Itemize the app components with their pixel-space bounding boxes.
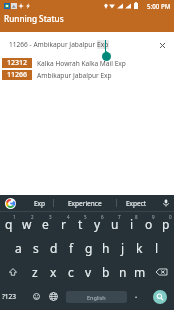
- staticText: Experience: [68, 199, 102, 208]
- staticText: c: [68, 264, 74, 280]
- button[interactable]: c: [62, 260, 80, 284]
- staticText: 2: [31, 214, 34, 220]
- staticText: Ambikapur Jabalpur Exp: [37, 71, 112, 80]
- button[interactable]: Expect: [117, 195, 157, 211]
- staticText: z: [32, 264, 38, 280]
- staticText: g: [85, 240, 93, 256]
- button[interactable]: a: [9, 236, 27, 260]
- staticText: i: [130, 216, 134, 232]
- button[interactable]: Emoji: [28, 284, 45, 309]
- button[interactable]: f: [63, 236, 80, 260]
- staticText: 12312: [7, 58, 28, 68]
- staticText: y: [94, 216, 101, 232]
- button[interactable]: h: [97, 236, 114, 260]
- button[interactable]: m: [131, 260, 148, 284]
- button[interactable]: 12312: [0, 57, 174, 69]
- button[interactable]: j: [114, 236, 131, 260]
- staticText: v: [85, 264, 92, 280]
- staticText: h: [102, 240, 110, 256]
- staticText: Expect: [126, 199, 147, 208]
- staticText: Exp: [34, 199, 46, 208]
- button[interactable]: e: [36, 212, 54, 236]
- button[interactable]: d: [45, 236, 63, 260]
- button[interactable]: Clear: [154, 37, 170, 53]
- staticText: 5: [84, 214, 87, 220]
- button[interactable]: Exp: [20, 195, 53, 211]
- staticText: b: [102, 264, 110, 280]
- staticText: English: [87, 294, 106, 301]
- staticText: 11266: [7, 70, 28, 80]
- button[interactable]: l: [148, 236, 165, 260]
- staticText: ?123: [2, 292, 16, 301]
- button[interactable]: Google search: [0, 195, 20, 211]
- button[interactable]: t: [72, 212, 89, 236]
- button[interactable]: x: [44, 260, 62, 284]
- staticText: 6: [101, 214, 104, 220]
- staticText: 3: [49, 214, 52, 220]
- button[interactable]: u: [106, 212, 123, 236]
- button[interactable]: g: [80, 236, 97, 260]
- staticText: 1: [13, 214, 16, 220]
- staticText: e: [42, 216, 49, 232]
- staticText: o: [145, 216, 153, 232]
- button[interactable]: Experience: [54, 195, 116, 211]
- button[interactable]: Voice input: [157, 195, 174, 211]
- staticText: m: [134, 264, 146, 280]
- button[interactable]: Backspace: [148, 260, 174, 284]
- button[interactable]: 11266: [0, 69, 174, 81]
- staticText: w: [22, 216, 32, 232]
- button[interactable]: i: [123, 212, 140, 236]
- button[interactable]: k: [131, 236, 148, 260]
- staticText: t: [78, 216, 83, 232]
- button[interactable]: q: [0, 212, 18, 236]
- staticText: j: [121, 240, 125, 256]
- button[interactable]: w: [18, 212, 36, 236]
- button[interactable]: Change language: [45, 284, 61, 309]
- button[interactable]: s: [27, 236, 45, 260]
- staticText: 11266 - Ambikapur Jabalpur: [9, 40, 97, 49]
- staticText: k: [136, 240, 143, 256]
- staticText: f: [69, 240, 74, 256]
- staticText: u: [111, 216, 119, 232]
- button[interactable]: o: [140, 212, 157, 236]
- staticText: Running Status: [4, 13, 64, 24]
- staticText: n: [119, 264, 127, 280]
- button[interactable]: Search: [146, 284, 174, 309]
- button[interactable]: .: [127, 284, 146, 309]
- staticText: Exp: [97, 40, 109, 49]
- staticText: 0: [169, 214, 172, 220]
- button[interactable]: z: [26, 260, 44, 284]
- staticText: 9: [152, 214, 155, 220]
- button[interactable]: p: [157, 212, 174, 236]
- staticText: 7: [118, 214, 121, 220]
- staticText: q: [5, 216, 13, 232]
- button[interactable]: y: [89, 212, 106, 236]
- button[interactable]: r: [54, 212, 72, 236]
- staticText: d: [50, 240, 58, 256]
- button[interactable]: Shift: [0, 260, 26, 284]
- staticText: r: [61, 216, 66, 232]
- button[interactable]: ?123: [0, 284, 22, 309]
- staticText: .: [135, 289, 138, 300]
- button[interactable]: n: [114, 260, 131, 284]
- staticText: 4: [67, 214, 70, 220]
- staticText: s: [33, 240, 39, 256]
- staticText: 5:00 PM: [147, 2, 171, 10]
- staticText: l: [155, 240, 159, 256]
- staticText: Kalka Howrah Kalka Mail Exp: [37, 59, 126, 68]
- button[interactable]: b: [97, 260, 114, 284]
- button[interactable]: English: [66, 291, 127, 303]
- staticText: p: [162, 216, 170, 232]
- staticText: a: [15, 240, 22, 256]
- staticText: x: [50, 264, 57, 280]
- button[interactable]: v: [80, 260, 97, 284]
- staticText: 8: [135, 214, 138, 220]
